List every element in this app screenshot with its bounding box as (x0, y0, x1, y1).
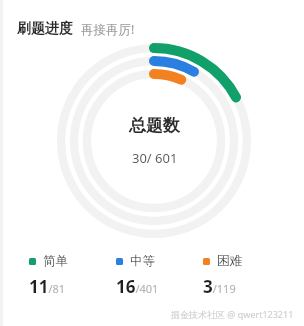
staticText: 困难 (217, 253, 242, 269)
staticText: 30/ 601 (132, 149, 178, 167)
button[interactable]: 中等 (116, 253, 203, 298)
staticText: 3/119 (203, 275, 236, 298)
staticText: 掘金技术社区 @ qwert123211 (171, 308, 294, 320)
button[interactable]: 简单 (29, 253, 116, 298)
button[interactable]: 困难 (203, 253, 290, 298)
staticText: 11/81 (29, 275, 66, 298)
staticText: 16/401 (116, 275, 159, 298)
button[interactable]: 刷题进度环形图 (56, 43, 252, 239)
staticText: 再接再厉! (81, 21, 135, 38)
button[interactable]: 刷题进度 (17, 20, 135, 38)
staticText: 中等 (130, 253, 155, 269)
staticText: 简单 (43, 253, 68, 269)
staticText: 总题数 (129, 115, 180, 136)
staticText: 刷题进度 (17, 20, 73, 38)
